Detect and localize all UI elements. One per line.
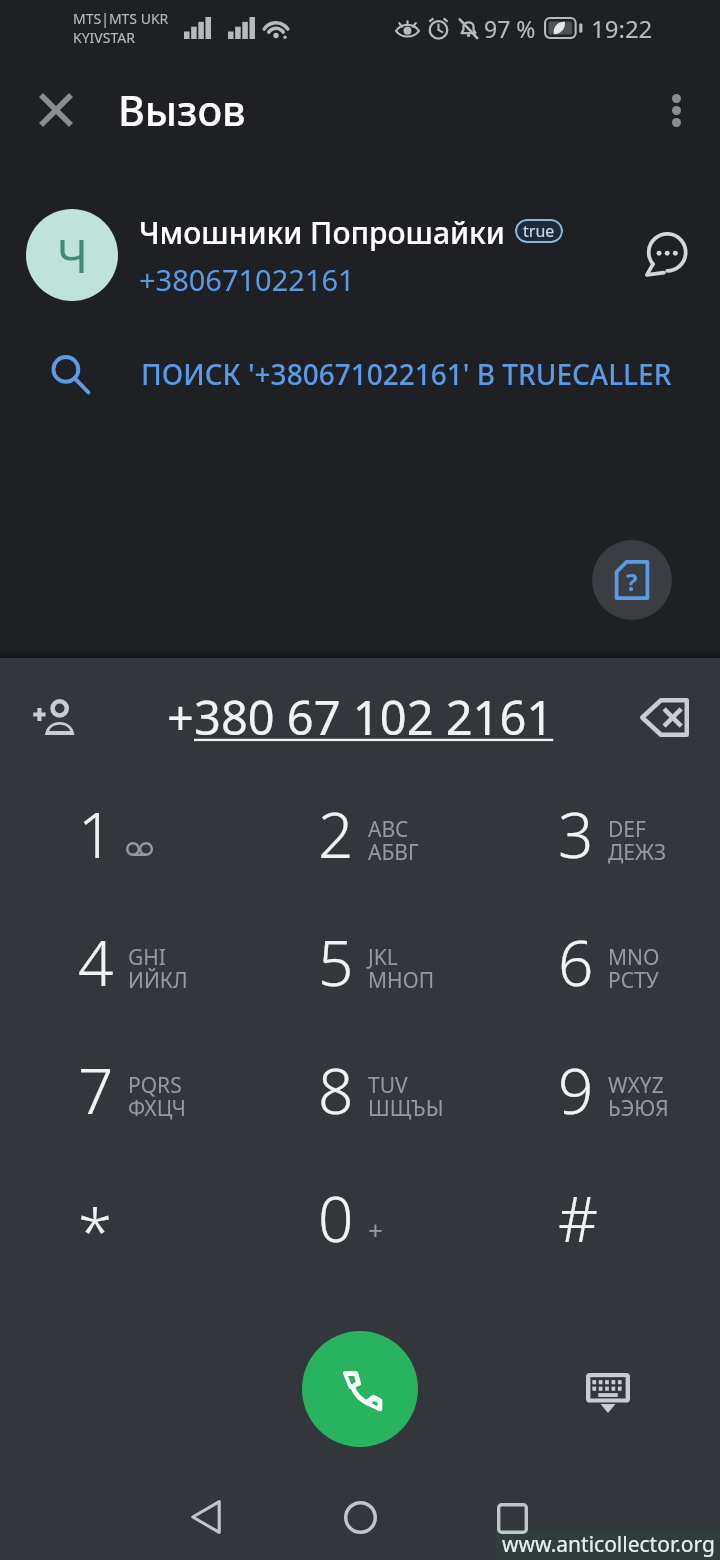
button[interactable]: Backspace <box>626 679 702 755</box>
staticText: true <box>523 220 555 242</box>
button[interactable]: Message <box>624 214 706 296</box>
button[interactable]: 2 <box>240 772 480 900</box>
staticText: 3 <box>558 792 594 876</box>
staticText: ? <box>626 565 638 598</box>
button[interactable]: Close <box>20 74 92 146</box>
staticText: GHI <box>128 943 166 972</box>
staticText: ПОИСК '+380671022161' В TRUECALLER <box>141 355 672 393</box>
button[interactable]: 4 <box>0 900 240 1028</box>
staticText: 2 <box>318 792 354 876</box>
staticText: 380 67 102 2161 <box>194 685 554 749</box>
button[interactable]: Ч <box>0 195 720 315</box>
staticText: JKL <box>368 943 398 972</box>
staticText: MTS|MTS UKR <box>73 9 169 28</box>
button[interactable]: 3 <box>480 772 720 900</box>
staticText: ШЩЪЫ <box>368 1094 444 1123</box>
staticText: 7 <box>78 1048 114 1132</box>
staticText: # <box>558 1176 599 1260</box>
button[interactable]: 6 <box>480 900 720 1028</box>
staticText: 1 <box>78 792 114 876</box>
staticText: 4 <box>78 920 114 1004</box>
staticText: + <box>368 1212 383 1247</box>
staticText: * <box>78 1189 113 1273</box>
button[interactable]: Home <box>320 1477 400 1557</box>
button[interactable]: Recents <box>472 1478 552 1558</box>
staticText: ФХЦЧ <box>128 1094 186 1123</box>
staticText: 0 <box>318 1176 354 1260</box>
staticText: 5 <box>318 920 354 1004</box>
button[interactable]: More options <box>642 76 710 144</box>
staticText: 97 % <box>484 13 536 44</box>
staticText: MNO <box>608 943 660 972</box>
staticText: +380671022161 <box>139 260 355 299</box>
staticText: TUV <box>368 1071 408 1100</box>
staticText: 19:22 <box>591 12 653 45</box>
button[interactable]: Hide keypad <box>570 1355 646 1431</box>
button[interactable]: 5 <box>240 900 480 1028</box>
staticText: РСТУ <box>608 966 659 995</box>
button[interactable]: Add contact <box>18 679 94 755</box>
button[interactable]: 1 <box>0 772 240 900</box>
button[interactable]: Call <box>302 1331 418 1447</box>
staticText: 8 <box>318 1048 354 1132</box>
staticText: Ч <box>57 224 88 287</box>
staticText: DEF <box>608 815 646 844</box>
staticText: www.anticollector.org <box>502 1530 715 1559</box>
staticText: ИЙКЛ <box>128 966 188 995</box>
staticText: МНОП <box>368 966 435 995</box>
staticText: + <box>167 685 194 749</box>
button[interactable]: 0 <box>240 1156 480 1284</box>
staticText: 6 <box>558 920 594 1004</box>
staticText: KYIVSTAR <box>73 28 135 47</box>
button[interactable]: 9 <box>480 1028 720 1156</box>
button[interactable]: 8 <box>240 1028 480 1156</box>
staticText: ДЕЖЗ <box>608 838 667 867</box>
staticText: ЬЭЮЯ <box>608 1094 669 1123</box>
button[interactable]: ПОИСК '+380671022161' В TRUECALLER <box>0 334 720 414</box>
staticText: 9 <box>558 1048 594 1132</box>
staticText: PQRS <box>128 1071 182 1100</box>
staticText: Вызов <box>118 82 246 138</box>
button[interactable]: # <box>480 1156 720 1284</box>
button[interactable]: 7 <box>0 1028 240 1156</box>
staticText: АБВГ <box>368 838 419 867</box>
button[interactable]: * <box>0 1156 240 1284</box>
button[interactable]: Unknown SIM <box>592 540 672 620</box>
button[interactable]: Back <box>166 1477 246 1557</box>
staticText: Чмошники Попрошайки <box>139 212 505 253</box>
staticText: ABC <box>368 815 409 844</box>
staticText: WXYZ <box>608 1071 664 1100</box>
